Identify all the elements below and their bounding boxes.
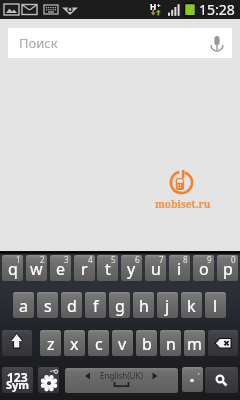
staticText: a xyxy=(19,295,28,317)
staticText: 1 xyxy=(16,255,21,265)
staticText: 2 xyxy=(40,255,45,265)
button[interactable]: z xyxy=(40,330,61,356)
staticText: g xyxy=(115,295,125,317)
staticText: Поиск xyxy=(19,34,58,52)
button[interactable]: r xyxy=(74,255,95,281)
button[interactable]: h xyxy=(133,292,154,318)
staticText: r xyxy=(81,258,88,280)
staticText: c xyxy=(95,333,103,355)
staticText: + xyxy=(157,2,161,10)
staticText: h xyxy=(139,295,149,317)
button[interactable]: Backspace xyxy=(208,330,238,356)
staticText: H xyxy=(150,1,157,12)
staticText: t xyxy=(105,258,111,280)
staticText: 123 xyxy=(7,369,28,385)
button[interactable]: c xyxy=(88,330,109,356)
staticText: p xyxy=(223,258,233,280)
button[interactable]: x xyxy=(64,330,85,356)
staticText: 7 xyxy=(159,255,164,265)
button[interactable]: Settings xyxy=(38,367,59,393)
staticText: English(UK) xyxy=(100,370,143,381)
staticText: 5 xyxy=(111,255,116,265)
button[interactable]: Period xyxy=(182,367,203,392)
button[interactable]: j xyxy=(157,292,178,318)
staticText: d xyxy=(67,295,77,317)
button[interactable]: a xyxy=(13,292,34,318)
button[interactable]: g xyxy=(109,292,130,318)
button[interactable]: y xyxy=(121,255,142,281)
staticText: f xyxy=(93,295,99,317)
button[interactable]: w xyxy=(26,255,47,281)
button[interactable]: m xyxy=(184,330,205,356)
staticText: n xyxy=(166,333,176,355)
button[interactable]: n xyxy=(160,330,181,356)
button[interactable]: f xyxy=(85,292,106,318)
button[interactable]: Search xyxy=(205,367,238,393)
staticText: 8 xyxy=(183,255,188,265)
staticText: Sym xyxy=(6,377,30,392)
button[interactable]: v xyxy=(112,330,133,356)
staticText: m xyxy=(187,333,202,355)
staticText: 15:28 xyxy=(199,0,235,19)
button[interactable]: q xyxy=(2,255,23,281)
staticText: 4 xyxy=(88,255,93,265)
staticText: y xyxy=(127,258,136,280)
button[interactable]: Поиск xyxy=(8,28,232,58)
staticText: i xyxy=(177,258,182,280)
staticText: , xyxy=(198,367,200,377)
staticText: z xyxy=(47,333,55,355)
staticText: 6 xyxy=(135,255,140,265)
button[interactable]: e xyxy=(50,255,71,281)
button[interactable]: t xyxy=(97,255,118,281)
staticText: s xyxy=(44,295,52,317)
staticText: mobiset.ru xyxy=(155,197,211,211)
staticText: q xyxy=(8,258,18,280)
button[interactable]: b xyxy=(136,330,157,356)
button[interactable]: l xyxy=(205,292,226,318)
staticText: u xyxy=(151,258,161,280)
button[interactable]: k xyxy=(181,292,202,318)
staticText: o xyxy=(199,258,209,280)
button[interactable]: o xyxy=(193,255,214,281)
staticText: v xyxy=(118,333,127,355)
staticText: 3 xyxy=(64,255,69,265)
staticText: 9 xyxy=(207,255,212,265)
button[interactable]: Space xyxy=(65,368,178,393)
button[interactable]: i xyxy=(169,255,190,281)
button[interactable]: Voice search xyxy=(202,28,232,58)
staticText: k xyxy=(187,295,196,317)
staticText: w xyxy=(30,258,43,280)
button[interactable]: u xyxy=(145,255,166,281)
button[interactable]: p xyxy=(217,255,238,281)
button[interactable]: d xyxy=(61,292,82,318)
staticText: l xyxy=(213,295,218,317)
button[interactable]: Shift xyxy=(2,330,32,356)
staticText: e xyxy=(56,258,66,280)
staticText: 0 xyxy=(231,255,236,265)
staticText: b xyxy=(142,333,152,355)
staticText: j xyxy=(165,295,170,317)
button[interactable]: s xyxy=(37,292,58,318)
button[interactable]: Symbols xyxy=(2,367,33,393)
staticText: x xyxy=(70,333,79,355)
